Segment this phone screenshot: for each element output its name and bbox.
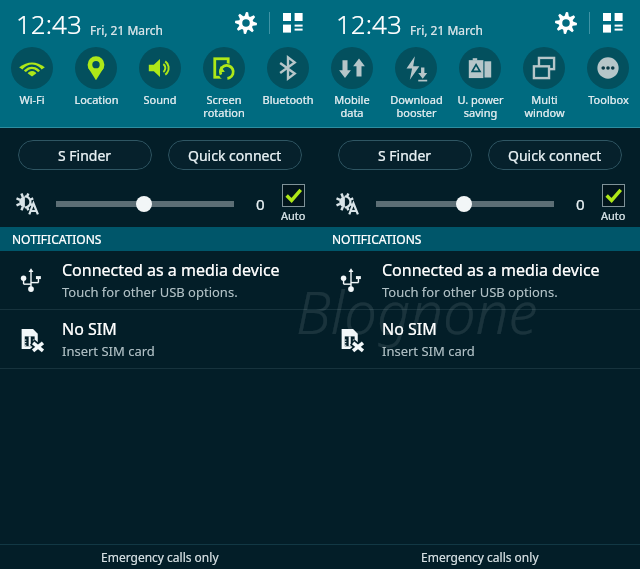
staticText: NOTIFICATIONS	[332, 231, 422, 247]
button[interactable]: Toolbox	[576, 46, 640, 107]
staticText: Screen rotation	[203, 92, 245, 120]
staticText: Insert SIM card	[62, 342, 155, 360]
button[interactable]: S Finder	[18, 140, 152, 170]
button[interactable]: Location	[64, 46, 128, 107]
staticText: Emergency calls only	[101, 549, 219, 565]
staticText: Blognone	[296, 272, 538, 351]
staticText: 12:43	[336, 6, 402, 41]
staticText: Multi window	[524, 92, 565, 120]
button[interactable]: Edit quick settings	[276, 6, 310, 40]
button[interactable]: Mobile data	[320, 46, 384, 120]
staticText: 0	[256, 194, 265, 214]
staticText: S Finder	[378, 146, 432, 165]
button[interactable]: Sound	[128, 46, 192, 107]
staticText: 0	[576, 194, 585, 214]
staticText: Quick connect	[508, 146, 602, 165]
staticText: 12:43	[16, 6, 82, 41]
staticText: Connected as a media device	[382, 259, 600, 281]
staticText: Connected as a media device	[62, 259, 280, 281]
staticText: S Finder	[58, 146, 112, 165]
button[interactable]: Settings	[549, 6, 583, 40]
button[interactable]: No SIM	[0, 310, 320, 368]
button[interactable]: Quick connect	[488, 140, 622, 170]
staticText: Touch for other USB options.	[382, 283, 558, 301]
button[interactable]: S Finder	[338, 140, 472, 170]
staticText: Toolbox	[588, 92, 629, 107]
button[interactable]: Connected as a media device	[320, 251, 640, 309]
staticText: NOTIFICATIONS	[12, 231, 102, 247]
button[interactable]: Brightness	[14, 190, 42, 218]
button[interactable]: Wi-Fi	[0, 46, 64, 107]
staticText: Auto	[281, 208, 306, 223]
button[interactable]: Quick connect	[168, 140, 302, 170]
button[interactable]: No SIM	[320, 310, 640, 368]
button[interactable]: Brightness level	[376, 194, 554, 214]
button[interactable]: Download booster	[384, 46, 448, 120]
button[interactable]: Multi window	[512, 46, 576, 120]
button[interactable]: Brightness level	[56, 194, 234, 214]
button[interactable]: Connected as a media device	[0, 251, 320, 309]
button[interactable]: Bluetooth	[256, 46, 320, 107]
staticText: Emergency calls only	[421, 549, 539, 565]
staticText: Location	[74, 92, 119, 107]
staticText: Bluetooth	[262, 92, 314, 107]
staticText: U. power saving	[457, 92, 504, 120]
staticText: Mobile data	[334, 92, 370, 120]
button[interactable]: Screen rotation	[192, 46, 256, 120]
staticText: Insert SIM card	[382, 342, 475, 360]
staticText: Sound	[143, 92, 177, 107]
staticText: Download booster	[390, 92, 443, 120]
staticText: No SIM	[382, 318, 437, 340]
staticText: Touch for other USB options.	[62, 283, 238, 301]
staticText: Fri, 21 March	[410, 22, 483, 38]
staticText: Auto	[601, 208, 626, 223]
staticText: No SIM	[62, 318, 117, 340]
button[interactable]: Settings	[229, 6, 263, 40]
button[interactable]: Auto brightness	[602, 184, 625, 207]
button[interactable]: Edit quick settings	[596, 6, 630, 40]
staticText: Fri, 21 March	[90, 22, 163, 38]
button[interactable]: U. power saving	[448, 46, 512, 120]
staticText: Wi-Fi	[19, 92, 45, 107]
button[interactable]: Brightness	[334, 190, 362, 218]
button[interactable]: Auto brightness	[282, 184, 305, 207]
staticText: Quick connect	[188, 146, 282, 165]
